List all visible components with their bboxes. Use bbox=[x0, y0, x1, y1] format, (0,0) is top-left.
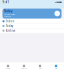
button[interactable]: Today bbox=[0, 24, 64, 28]
staticText: 3 of 5 done bbox=[4, 16, 11, 17]
staticText: Today bbox=[4, 10, 13, 13]
staticText: Me bbox=[55, 68, 57, 69]
button[interactable]: Search bbox=[16, 62, 32, 72]
staticText: Search bbox=[21, 68, 27, 69]
staticText: Archive bbox=[6, 29, 16, 32]
staticText: Home bbox=[6, 68, 10, 69]
staticText: Today bbox=[6, 24, 13, 28]
button[interactable]: Inbox bbox=[0, 19, 64, 23]
button[interactable]: Home bbox=[0, 62, 16, 72]
staticText: Inbox bbox=[6, 19, 14, 23]
staticText: Lists bbox=[38, 68, 41, 69]
button[interactable]: Today bbox=[2, 8, 61, 18]
button[interactable]: Archive bbox=[0, 28, 64, 33]
button[interactable]: Me bbox=[48, 62, 64, 72]
staticText: 9:41 bbox=[2, 0, 9, 4]
staticText: Morning routine bbox=[4, 13, 15, 15]
button[interactable]: Lists bbox=[32, 62, 48, 72]
